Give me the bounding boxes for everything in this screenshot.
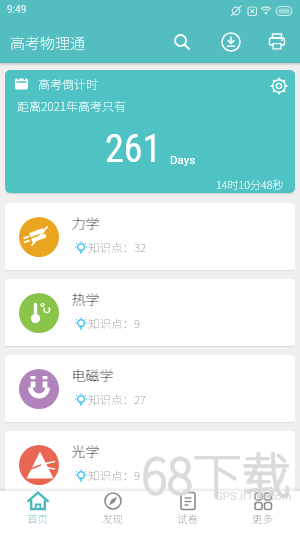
button[interactable] — [265, 30, 289, 54]
staticText: 电磁学 — [71, 365, 113, 385]
staticText: 力学 — [72, 213, 100, 233]
staticText: 热学 — [71, 289, 99, 309]
staticText: GPS.it168.com — [215, 489, 292, 502]
staticText: 试卷 — [177, 511, 198, 526]
staticText: 首页 — [27, 511, 48, 526]
staticText: 知识点：27 — [88, 391, 146, 408]
staticText: 高考物理通 — [10, 32, 86, 54]
button[interactable] — [269, 76, 289, 96]
staticText: 高考倒计时 — [38, 75, 99, 92]
button[interactable]: 高考倒计时 — [5, 70, 295, 193]
button[interactable]: 发现 — [75, 491, 150, 533]
staticText: 知识点：9 — [88, 315, 140, 332]
staticText: 发现 — [102, 511, 123, 526]
staticText: 261 — [105, 127, 162, 172]
button[interactable]: 更多 — [225, 491, 300, 533]
button[interactable] — [170, 30, 194, 54]
staticText: 力学 — [71, 213, 99, 233]
staticText: 电磁学 — [72, 365, 114, 385]
staticText: 光学 — [71, 441, 99, 461]
button[interactable]: 试卷 — [150, 491, 225, 533]
staticText: 光学 — [72, 441, 100, 461]
staticText: 68下载 — [142, 438, 292, 509]
staticText: 知识点：32 — [88, 239, 146, 256]
button[interactable]: 首页 — [0, 491, 75, 533]
staticText: 68下载 — [142, 437, 292, 508]
staticText: Days — [170, 153, 196, 166]
staticText: 距离2021年高考只有 — [17, 97, 127, 114]
staticText: 14时10分48秒 — [216, 176, 284, 192]
button[interactable]: 电磁学 — [5, 355, 295, 422]
button[interactable]: 光学 — [5, 431, 295, 498]
staticText: 知识点：9 — [88, 467, 140, 484]
staticText: 9:49 — [7, 4, 27, 16]
staticText: 热学 — [72, 289, 100, 309]
button[interactable]: 力学 — [5, 203, 295, 270]
button[interactable] — [219, 30, 243, 54]
button[interactable]: 热学 — [5, 279, 295, 346]
staticText: 更多 — [252, 511, 273, 526]
staticText: 68下载 — [141, 437, 291, 508]
